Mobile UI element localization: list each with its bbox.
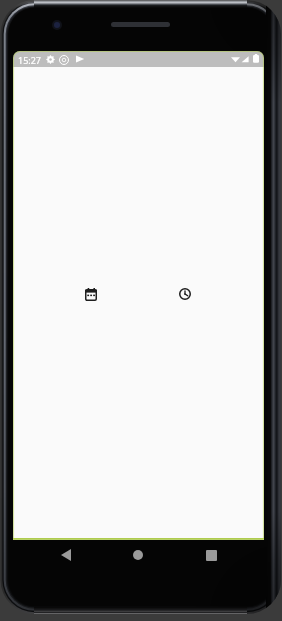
button[interactable]: Back	[52, 541, 80, 569]
button[interactable]: Pick time	[167, 276, 203, 312]
staticText: 15:27	[18, 54, 42, 66]
button[interactable]: Recent apps	[197, 541, 225, 569]
button[interactable]: Home	[124, 541, 152, 569]
button[interactable]: Pick date	[73, 276, 109, 312]
